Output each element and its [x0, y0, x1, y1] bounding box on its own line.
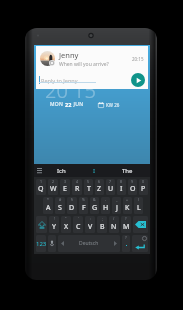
- button[interactable]: ?: [121, 216, 131, 233]
- staticText: 1: [40, 179, 43, 184]
- button[interactable]: Shift: [36, 216, 47, 233]
- staticText: #: [59, 197, 62, 202]
- staticText: W: [50, 184, 57, 194]
- button[interactable]: 5: [84, 179, 93, 195]
- staticText: H: [103, 203, 109, 213]
- staticText: X: [64, 222, 69, 232]
- staticText: D: [69, 203, 75, 213]
- other: Shift: [36, 216, 47, 233]
- staticText: 4: [76, 179, 79, 184]
- staticText: 6: [98, 179, 101, 184]
- staticText: 2: [52, 179, 55, 184]
- staticText: T: [87, 184, 91, 194]
- staticText: S: [58, 203, 62, 213]
- staticText: _: [116, 197, 118, 202]
- button[interactable]: :: [85, 216, 95, 233]
- staticText: -: [105, 197, 107, 202]
- button[interactable]: ': [73, 216, 83, 233]
- button[interactable]: Send: [131, 73, 145, 87]
- staticText: 9: [131, 179, 134, 184]
- button[interactable]: Backspace: [133, 216, 148, 233]
- staticText: Reply to Jenny: [41, 77, 78, 84]
- button[interactable]: 1: [36, 179, 46, 195]
- button[interactable]: %: [79, 197, 88, 214]
- staticText: Y: [52, 222, 56, 232]
- button[interactable]: ?: [122, 235, 130, 252]
- staticText: C: [76, 222, 81, 232]
- staticText: ": [65, 216, 67, 221]
- staticText: 22: [65, 101, 72, 108]
- button[interactable]: Voice input: [48, 235, 56, 252]
- staticText: 0: [142, 179, 145, 184]
- button[interactable]: ;: [97, 216, 107, 233]
- staticText: I: [120, 184, 123, 194]
- button[interactable]: The: [111, 164, 144, 177]
- other: Voice input: [48, 235, 56, 252]
- staticText: ?: [125, 216, 127, 221]
- button[interactable]: 4: [72, 179, 82, 195]
- staticText: %: [82, 197, 85, 202]
- staticText: ;: [102, 216, 103, 221]
- other: Backspace: [133, 216, 148, 233]
- button[interactable]: Deutsch: [58, 235, 120, 252]
- staticText: Ich: [57, 167, 66, 175]
- button[interactable]: I: [78, 164, 111, 177]
- button[interactable]: 0: [139, 179, 148, 195]
- staticText: 20 15: [45, 77, 96, 104]
- staticText: O: [130, 184, 136, 194]
- staticText: G: [92, 203, 98, 213]
- button[interactable]: 6: [95, 179, 104, 195]
- button[interactable]: *: [43, 197, 53, 214]
- staticText: /: [113, 216, 115, 221]
- staticText: 123: [36, 240, 46, 248]
- other: Enter: [132, 235, 148, 252]
- button[interactable]: 8: [117, 179, 126, 195]
- button[interactable]: 123: [36, 235, 46, 252]
- staticText: I: [93, 167, 96, 175]
- staticText: ?: [125, 235, 127, 240]
- button[interactable]: §: [67, 197, 77, 214]
- staticText: 5: [87, 179, 90, 184]
- staticText: MON: [50, 101, 65, 108]
- staticText: Jenny: [59, 50, 79, 60]
- button[interactable]: _: [112, 197, 121, 214]
- staticText: R: [75, 184, 80, 194]
- button[interactable]: 3: [60, 179, 70, 195]
- staticText: M: [123, 222, 130, 232]
- button[interactable]: +: [123, 197, 132, 214]
- button[interactable]: -: [101, 197, 110, 214]
- staticText: &: [93, 197, 96, 202]
- button[interactable]: Enter: [132, 235, 148, 252]
- staticText: When will you arrive?: [59, 61, 109, 68]
- button[interactable]: 7: [106, 179, 115, 195]
- button[interactable]: (: [134, 197, 143, 214]
- staticText: V: [88, 222, 93, 232]
- button[interactable]: 2: [48, 179, 58, 195]
- button[interactable]: 9: [128, 179, 137, 195]
- staticText: KW 26: [106, 102, 120, 108]
- staticText: §: [71, 197, 73, 202]
- button[interactable]: ": [61, 216, 71, 233]
- staticText: ': [78, 216, 79, 221]
- button[interactable]: !: [49, 216, 59, 233]
- button[interactable]: /: [109, 216, 119, 233]
- staticText: Deutsch: [79, 240, 99, 247]
- staticText: A: [46, 203, 51, 213]
- button[interactable]: #: [55, 197, 65, 214]
- button[interactable]: Jenny: [36, 46, 148, 89]
- staticText: JUN: [72, 101, 84, 108]
- staticText: J: [116, 203, 118, 213]
- staticText: +: [126, 197, 129, 202]
- button[interactable]: Keyboard menu: [34, 164, 45, 177]
- staticText: 20:15: [132, 56, 144, 62]
- staticText: (: [138, 197, 140, 202]
- staticText: N: [111, 222, 117, 232]
- staticText: E: [63, 184, 67, 194]
- staticText: *: [47, 197, 49, 202]
- button[interactable]: &: [90, 197, 99, 214]
- staticText: :: [90, 216, 91, 221]
- staticText: L: [137, 203, 141, 213]
- button[interactable]: Ich: [45, 164, 78, 177]
- staticText: F: [82, 203, 86, 213]
- staticText: B: [100, 222, 105, 232]
